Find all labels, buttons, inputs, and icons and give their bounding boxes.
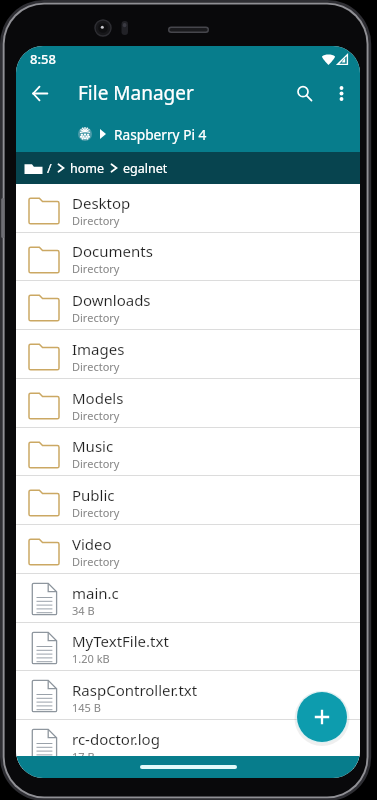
staticText: Images	[72, 339, 125, 359]
staticText: Directory	[72, 310, 120, 325]
staticText: Directory	[72, 408, 120, 423]
staticText: 145 B	[72, 700, 101, 715]
staticText: Directory	[72, 359, 120, 374]
button[interactable]: rc-doctor.log	[16, 720, 360, 768]
staticText: Directory	[72, 261, 120, 276]
button[interactable]: Music	[16, 428, 360, 475]
staticText: main.c	[72, 583, 119, 603]
button[interactable]: Images	[16, 330, 360, 378]
button[interactable]: Back	[22, 75, 58, 111]
staticText: Directory	[72, 554, 120, 569]
staticText: Directory	[72, 213, 120, 228]
button[interactable]: Add	[290, 685, 354, 749]
staticText: Directory	[72, 505, 120, 520]
staticText: 1.20 kB	[72, 651, 110, 666]
staticText: 34 B	[72, 603, 95, 618]
staticText: rc-doctor.log	[72, 729, 160, 749]
staticText: Desktop	[72, 193, 131, 213]
button[interactable]: Home	[140, 765, 237, 769]
button[interactable]: Search	[286, 75, 322, 111]
button[interactable]: main.c	[16, 574, 360, 622]
button[interactable]: Video	[16, 525, 360, 573]
staticText: Downloads	[72, 290, 151, 310]
staticText: Raspberry Pi 4	[114, 125, 207, 144]
staticText: Models	[72, 388, 124, 408]
staticText: Video	[72, 534, 112, 554]
staticText: RaspController.txt	[72, 680, 198, 700]
staticText: 17 B	[72, 749, 95, 764]
staticText: Public	[72, 485, 115, 505]
staticText: Documents	[72, 241, 153, 261]
staticText: 8:58	[30, 50, 56, 68]
staticText: File Manager	[78, 80, 194, 106]
button[interactable]: RaspController.txt	[16, 671, 360, 719]
button[interactable]: Public	[16, 476, 360, 524]
button[interactable]: Models	[16, 379, 360, 427]
staticText: MyTextFile.txt	[72, 631, 169, 651]
button[interactable]: Documents	[16, 233, 360, 280]
staticText: Directory	[72, 456, 120, 471]
staticText: /	[47, 160, 52, 177]
staticText: egalnet	[123, 160, 168, 177]
staticText: Music	[72, 436, 114, 456]
button[interactable]: Downloads	[16, 281, 360, 329]
button[interactable]: Desktop	[16, 184, 360, 232]
button[interactable]: More options	[323, 75, 359, 111]
button[interactable]: MyTextFile.txt	[16, 623, 360, 670]
staticText: home	[70, 160, 105, 177]
